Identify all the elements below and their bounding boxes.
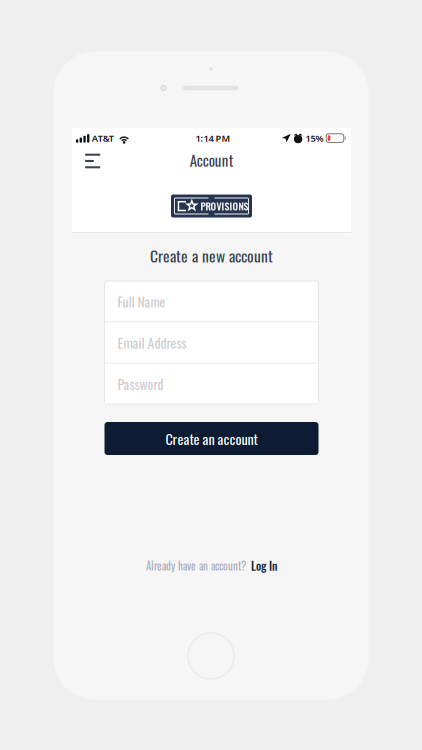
button[interactable]: Create an account [104, 422, 318, 455]
staticText: PROVISIONS [200, 199, 248, 213]
staticText: Password [117, 374, 163, 394]
staticText: Create an account [165, 428, 257, 449]
staticText: Account [190, 149, 234, 171]
staticText: 1:14 PM [196, 132, 231, 144]
staticText: Email Address [117, 332, 186, 353]
button[interactable]: Email Address [104, 322, 318, 363]
button[interactable]: Password [104, 364, 318, 404]
staticText: Create a new account [150, 244, 273, 267]
button[interactable]: Already have an account? [146, 553, 277, 578]
staticText: 15% [305, 132, 323, 144]
staticText: Full Name [117, 291, 165, 311]
button[interactable]: Menu [72, 146, 119, 176]
staticText: Already have an account? [146, 557, 246, 574]
staticText: AT&T [92, 132, 114, 144]
button[interactable]: Full Name [104, 281, 318, 321]
staticText: Log In [251, 557, 277, 574]
